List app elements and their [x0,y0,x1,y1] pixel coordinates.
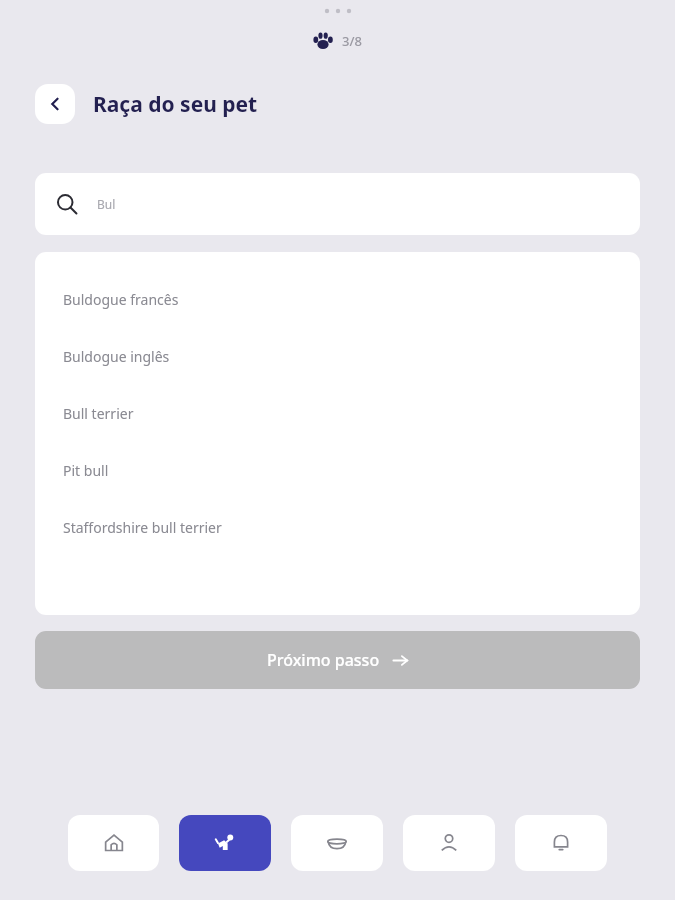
button[interactable]: Perfil [403,815,495,871]
button[interactable]: Próximo passo [35,631,640,689]
button[interactable]: Alimentação [291,815,383,871]
staticText: Próximo passo [267,649,380,671]
button[interactable]: Início [68,815,159,871]
staticText: 3/8 [342,32,362,50]
staticText: Raça do seu pet [93,90,258,119]
button[interactable]: Staffordshire bull terrier [35,499,640,556]
button[interactable]: Pit bull [35,442,640,499]
button[interactable]: Bul [35,173,640,235]
staticText: Staffordshire bull terrier [63,518,222,537]
button[interactable]: Buldogue francês [35,271,640,328]
button[interactable]: Buldogue inglês [35,328,640,385]
staticText: Buldogue francês [63,290,179,309]
button[interactable]: Notificações [515,815,607,871]
staticText: Pit bull [63,461,109,480]
button[interactable]: Bull terrier [35,385,640,442]
button[interactable]: Voltar [35,84,75,124]
staticText: Bull terrier [63,404,134,423]
staticText: Buldogue inglês [63,347,170,366]
button[interactable]: Pets [179,815,271,871]
staticText: Bul [97,196,116,212]
